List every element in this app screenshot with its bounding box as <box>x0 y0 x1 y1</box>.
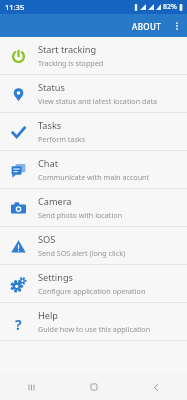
staticText: Camera <box>38 195 72 208</box>
staticText: Start tracking <box>38 43 97 56</box>
staticText: Perform tasks <box>38 134 86 144</box>
button[interactable]: More options <box>167 16 187 36</box>
button[interactable]: Settings <box>0 265 187 302</box>
button[interactable]: Camera <box>0 189 187 226</box>
staticText: Help <box>38 309 59 322</box>
button[interactable]: Status <box>0 75 187 112</box>
button[interactable]: Recent apps <box>0 374 63 400</box>
staticText: ? <box>15 315 22 330</box>
staticText: Send photo with location <box>38 210 123 220</box>
staticText: Send SOS alert (long click) <box>38 248 126 258</box>
button[interactable]: Home <box>63 374 125 400</box>
staticText: 82% <box>163 2 177 12</box>
staticText: Configure application operation <box>38 286 146 296</box>
staticText: 11:35 <box>5 2 25 12</box>
staticText: SOS <box>38 233 56 246</box>
button[interactable]: SOS <box>0 227 187 264</box>
staticText: Guide how to use this application <box>38 324 151 334</box>
button[interactable]: Chat <box>0 151 187 188</box>
staticText: Chat <box>38 157 58 170</box>
staticText: Tracking is stopped <box>38 58 104 68</box>
staticText: Status <box>38 81 65 94</box>
button[interactable]: ? <box>0 303 187 340</box>
staticText: ABOUT <box>132 21 162 32</box>
staticText: Communicate with main account <box>38 172 150 182</box>
staticText: Settings <box>38 271 73 284</box>
button[interactable]: ABOUT <box>127 18 167 35</box>
staticText: Tasks <box>38 119 62 132</box>
button[interactable]: Start tracking <box>0 37 187 74</box>
button[interactable]: Tasks <box>0 113 187 150</box>
button[interactable]: Back <box>125 374 187 400</box>
staticText: View status and latest location data <box>38 96 158 106</box>
